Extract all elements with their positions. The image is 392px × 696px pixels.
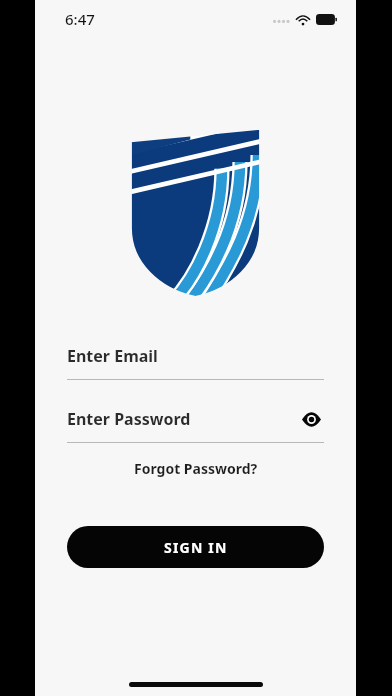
button[interactable]: Enter Email — [67, 341, 324, 380]
button[interactable]: Forgot Password? — [128, 456, 264, 481]
button[interactable]: Enter Password — [67, 404, 324, 443]
staticText: Enter Email — [67, 345, 158, 367]
staticText: SIGN IN — [164, 538, 228, 557]
staticText: 6:47 — [65, 9, 95, 29]
button[interactable]: Show password — [298, 406, 324, 432]
staticText: Enter Password — [67, 408, 191, 430]
button[interactable]: SIGN IN — [67, 526, 324, 568]
staticText: Forgot Password? — [134, 459, 258, 478]
